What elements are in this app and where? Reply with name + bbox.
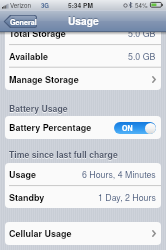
staticText: 6 Hours, 4 Minutes [82, 168, 156, 181]
staticText: Cellular Usage [9, 227, 72, 240]
button[interactable]: Battery Percentage on [114, 122, 156, 134]
staticText: General [10, 17, 37, 27]
staticText: Manage Storage [9, 73, 79, 86]
button[interactable]: Available [5, 45, 161, 68]
staticText: 5.0 GB [128, 50, 156, 63]
staticText: Battery Percentage [9, 121, 92, 134]
staticText: Verizon [10, 1, 31, 10]
button[interactable]: Manage Storage [5, 68, 161, 90]
staticText: Available [9, 50, 49, 63]
staticText: Usage [68, 14, 99, 29]
button[interactable]: Standby [5, 186, 161, 208]
staticText: ON [122, 123, 133, 133]
button[interactable]: Usage [5, 163, 161, 186]
staticText: 5.0 GB [128, 27, 156, 40]
button[interactable]: General [3, 15, 37, 28]
button[interactable]: Cellular Usage [5, 222, 161, 245]
staticText: Usage [9, 168, 37, 181]
staticText: 5:34 PM [68, 1, 93, 10]
staticText: 54% [135, 1, 148, 10]
staticText: Standby [9, 191, 45, 204]
staticText: Battery Usage [9, 102, 68, 114]
staticText: 1 Day, 2 Hours [98, 191, 156, 204]
staticText: 3G [41, 1, 50, 10]
staticText: Time since last full charge [9, 148, 118, 160]
button[interactable]: Total Storage [5, 22, 161, 45]
staticText: Total Storage [9, 27, 66, 40]
